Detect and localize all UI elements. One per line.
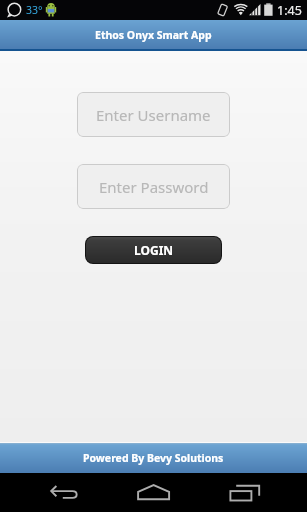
- staticText: LOGIN: [134, 242, 174, 258]
- staticText: 33°: [26, 3, 43, 17]
- staticText: Enter Username: [96, 105, 211, 125]
- staticText: 1:45: [277, 2, 302, 19]
- staticText: Ethos Onyx Smart App: [95, 28, 212, 42]
- button[interactable]: Enter Username: [77, 92, 230, 137]
- button[interactable]: Recent apps: [221, 473, 269, 512]
- button[interactable]: LOGIN: [86, 237, 221, 263]
- button[interactable]: Powered By Bevy Solutions: [0, 443, 307, 473]
- button[interactable]: Back: [40, 473, 88, 512]
- staticText: Enter Password: [99, 177, 209, 197]
- button[interactable]: Home: [130, 473, 178, 512]
- button[interactable]: Enter Password: [77, 164, 230, 209]
- staticText: Powered By Bevy Solutions: [83, 451, 224, 465]
